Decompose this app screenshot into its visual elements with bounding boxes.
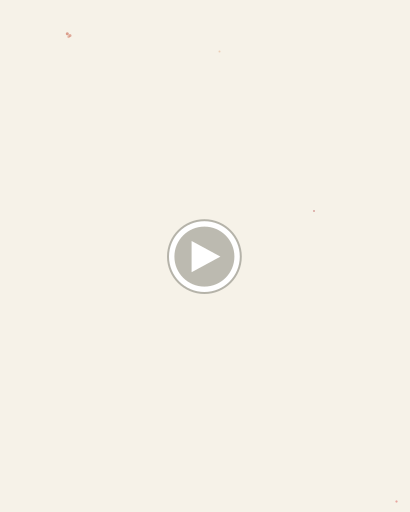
button[interactable]: Play (167, 219, 242, 294)
